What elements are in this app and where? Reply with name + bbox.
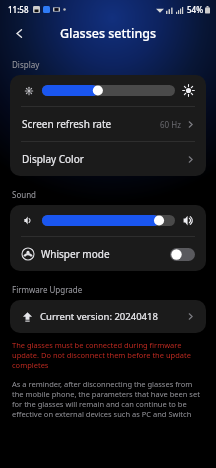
staticText: 11:58	[8, 4, 29, 15]
button[interactable]	[10, 205, 206, 236]
button[interactable]: Whisper mode	[10, 237, 206, 271]
staticText: Current version: 20240418	[40, 310, 158, 323]
staticText: Firmware Upgrade	[12, 284, 83, 295]
staticText: Display	[12, 59, 40, 70]
button[interactable]	[10, 75, 206, 106]
button[interactable]: Current version: 20240418	[10, 300, 206, 333]
staticText: The glasses must be connected during fir…	[12, 340, 204, 370]
staticText: 54%	[187, 4, 203, 15]
staticText: Sound	[12, 189, 37, 200]
button[interactable]: Back	[8, 22, 30, 44]
staticText: As a reminder, after disconnecting the g…	[12, 379, 204, 419]
staticText: Whisper mode	[41, 247, 110, 261]
staticText: 60 Hz	[160, 119, 181, 130]
staticText: Screen refresh rate	[22, 117, 112, 131]
button[interactable]: Display Color	[10, 142, 206, 176]
staticText: Glasses settings	[60, 25, 157, 42]
button[interactable]: Whisper mode toggle	[170, 248, 195, 261]
button[interactable]: Screen refresh rate	[10, 107, 206, 141]
staticText: Display Color	[22, 152, 84, 166]
